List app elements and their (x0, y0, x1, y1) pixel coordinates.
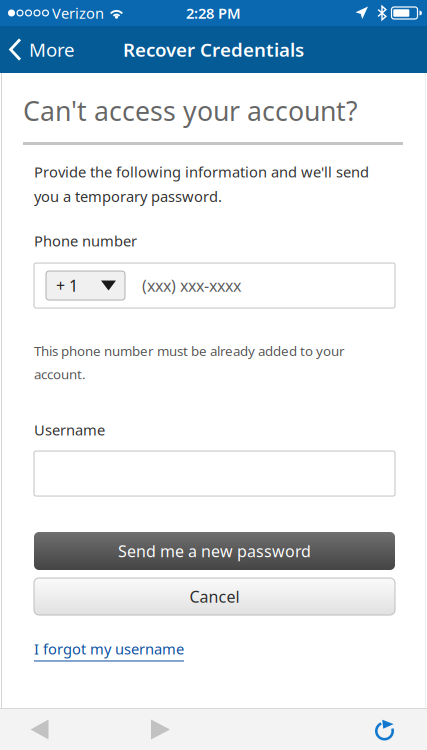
staticText: More (29, 37, 75, 62)
staticText: Phone number (34, 231, 137, 250)
button[interactable]: Forward (79, 709, 242, 750)
button[interactable]: Back (0, 709, 79, 750)
button[interactable]: Send me a new password (34, 532, 395, 570)
staticText: Provide the following information and we… (34, 162, 369, 206)
staticText: Can't access your account? (23, 93, 358, 128)
staticText: This phone number must be already added … (34, 342, 345, 383)
staticText: Username (34, 420, 105, 439)
staticText: I forgot my username (34, 639, 184, 658)
staticText: 2:28 PM (186, 3, 241, 23)
staticText: + 1 (56, 275, 78, 296)
staticText: Send me a new password (118, 540, 311, 562)
staticText: Verizon (52, 3, 104, 23)
button[interactable]: Cancel (34, 578, 395, 615)
staticText: Cancel (189, 586, 239, 607)
staticText: (xxx) xxx-xxxx (142, 275, 241, 296)
button[interactable]: More (0, 26, 87, 73)
staticText: Recover Credentials (123, 37, 304, 62)
button[interactable]: I forgot my username (34, 639, 184, 661)
button[interactable]: Reload (355, 709, 415, 750)
button[interactable]: + 1 (46, 271, 125, 300)
